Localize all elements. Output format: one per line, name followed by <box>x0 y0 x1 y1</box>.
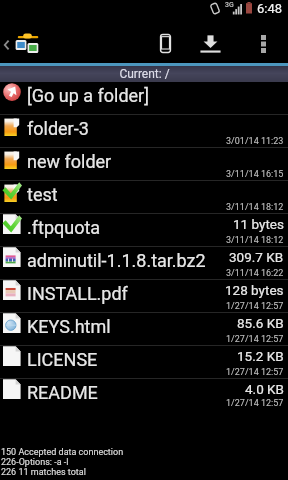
staticText: LICENSE <box>27 349 98 370</box>
staticText: 3/11/14 16:22 <box>226 268 284 279</box>
staticText: INSTALL.pdf <box>27 283 128 304</box>
staticText: 128 bytes <box>225 282 284 298</box>
button[interactable]: README <box>0 379 288 409</box>
staticText: 11 bytes <box>233 216 284 232</box>
button[interactable]: Local device <box>147 24 183 63</box>
button[interactable]: folder-3 <box>0 115 288 147</box>
button[interactable]: test <box>0 181 288 213</box>
staticText: 309.7 KB <box>229 249 284 265</box>
staticText: 1/27/14 12:57 <box>226 367 284 378</box>
button[interactable]: More options <box>249 24 277 63</box>
staticText: KEYS.html <box>27 316 111 337</box>
staticText: 6:48 <box>257 1 283 16</box>
staticText: 3G <box>225 1 234 9</box>
button[interactable]: Download <box>192 24 228 63</box>
staticText: 1/27/14 12:57 <box>226 301 284 312</box>
staticText: 4.0 KB <box>245 381 284 397</box>
staticText: 85.6 KB <box>237 315 284 331</box>
staticText: 15.2 KB <box>237 348 284 364</box>
button[interactable]: new folder <box>0 148 288 180</box>
staticText: new folder <box>27 151 112 172</box>
other: Navigate up <box>4 40 9 50</box>
staticText: README <box>27 382 98 403</box>
button[interactable]: LICENSE <box>0 346 288 378</box>
button[interactable]: adminutil-1.1.8.tar.bz2 <box>0 247 288 279</box>
button[interactable]: .ftpquota <box>0 214 288 246</box>
staticText: 3/11/14 16:15 <box>226 169 284 180</box>
staticText: folder-3 <box>27 118 89 139</box>
button[interactable]: KEYS.html <box>0 313 288 345</box>
staticText: 3/01/14 11:23 <box>226 136 284 147</box>
staticText: test <box>27 184 58 205</box>
staticText: 1/27/14 12:57 <box>226 334 284 345</box>
staticText: 3/11/14 18:12 <box>226 202 284 213</box>
staticText: 150 Accepted data connection 226-Options… <box>1 447 124 477</box>
button[interactable]: INSTALL.pdf <box>0 280 288 312</box>
staticText: .ftpquota <box>27 217 101 238</box>
staticText: Current: / <box>119 67 170 81</box>
staticText: 3/11/14 18:12 <box>226 235 284 246</box>
staticText: [Go up a folder] <box>27 85 149 106</box>
staticText: adminutil-1.1.8.tar.bz2 <box>27 250 206 271</box>
button[interactable]: [Go up a folder] <box>0 82 288 114</box>
button[interactable]: Navigate up <box>0 24 47 63</box>
staticText: 1/27/14 12:57 <box>226 398 284 409</box>
